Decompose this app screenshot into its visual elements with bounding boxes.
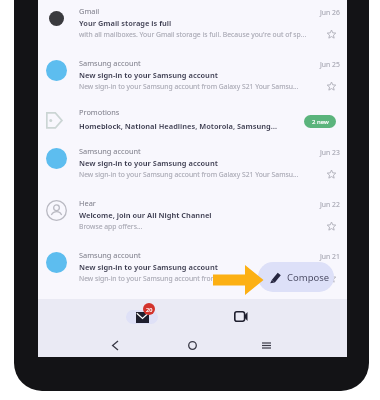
button[interactable]: Star xyxy=(323,270,339,286)
staticText: Promotions xyxy=(79,107,120,117)
staticText: New sign-in to your Samsung account xyxy=(79,262,218,272)
staticText: Jun 23 xyxy=(320,148,340,157)
staticText: 2 new xyxy=(312,118,329,126)
button[interactable]: Compose xyxy=(258,262,334,292)
staticText: Samsung account xyxy=(79,58,141,68)
staticText: Jun 21 xyxy=(320,252,340,261)
button[interactable]: Recent apps xyxy=(252,334,280,357)
button[interactable]: Gmail xyxy=(38,0,347,52)
staticText: Samsung account xyxy=(79,146,141,156)
staticText: New sign-in to your Samsung account xyxy=(79,70,218,80)
button[interactable]: Promotions xyxy=(38,104,347,140)
button[interactable]: Hear xyxy=(38,192,347,244)
staticText: Samsung account xyxy=(79,250,141,260)
staticText: Jun 25 xyxy=(320,60,340,69)
staticText: Your Gmail storage is full xyxy=(79,18,172,28)
button[interactable]: Star xyxy=(323,26,339,42)
staticText: Welcome, join our All Night Channel xyxy=(79,210,212,220)
staticText: Browse app offers... xyxy=(79,222,143,231)
staticText: 20 xyxy=(146,306,153,313)
button[interactable]: Home xyxy=(178,334,206,357)
button[interactable]: 2 new xyxy=(304,115,336,128)
staticText: Jun 22 xyxy=(320,200,340,209)
staticText: Compose xyxy=(287,271,330,284)
staticText: Homeblock, National Headlines, Motorola,… xyxy=(79,121,279,131)
staticText: Gmail xyxy=(79,6,100,16)
staticText: New sign-in to your Samsung account xyxy=(79,158,218,168)
staticText: New sign-in to your Samsung account from… xyxy=(79,274,299,283)
button[interactable]: Meet xyxy=(188,299,293,334)
button[interactable]: Mail xyxy=(89,299,194,334)
staticText: Jun 26 xyxy=(320,8,340,17)
staticText: New sign-in to your Samsung account from… xyxy=(79,170,299,179)
button[interactable]: Back xyxy=(101,334,129,357)
button[interactable]: Star xyxy=(323,218,339,234)
staticText: Hear xyxy=(79,198,96,208)
button[interactable]: Samsung account xyxy=(38,140,347,192)
button[interactable]: Star xyxy=(323,78,339,94)
staticText: New sign-in to your Samsung account from… xyxy=(79,82,299,91)
button[interactable]: Star xyxy=(323,166,339,182)
staticText: with all mailboxes. Your Gmail storage i… xyxy=(79,30,307,39)
button[interactable]: Samsung account xyxy=(38,244,347,296)
button[interactable]: Samsung account xyxy=(38,52,347,104)
